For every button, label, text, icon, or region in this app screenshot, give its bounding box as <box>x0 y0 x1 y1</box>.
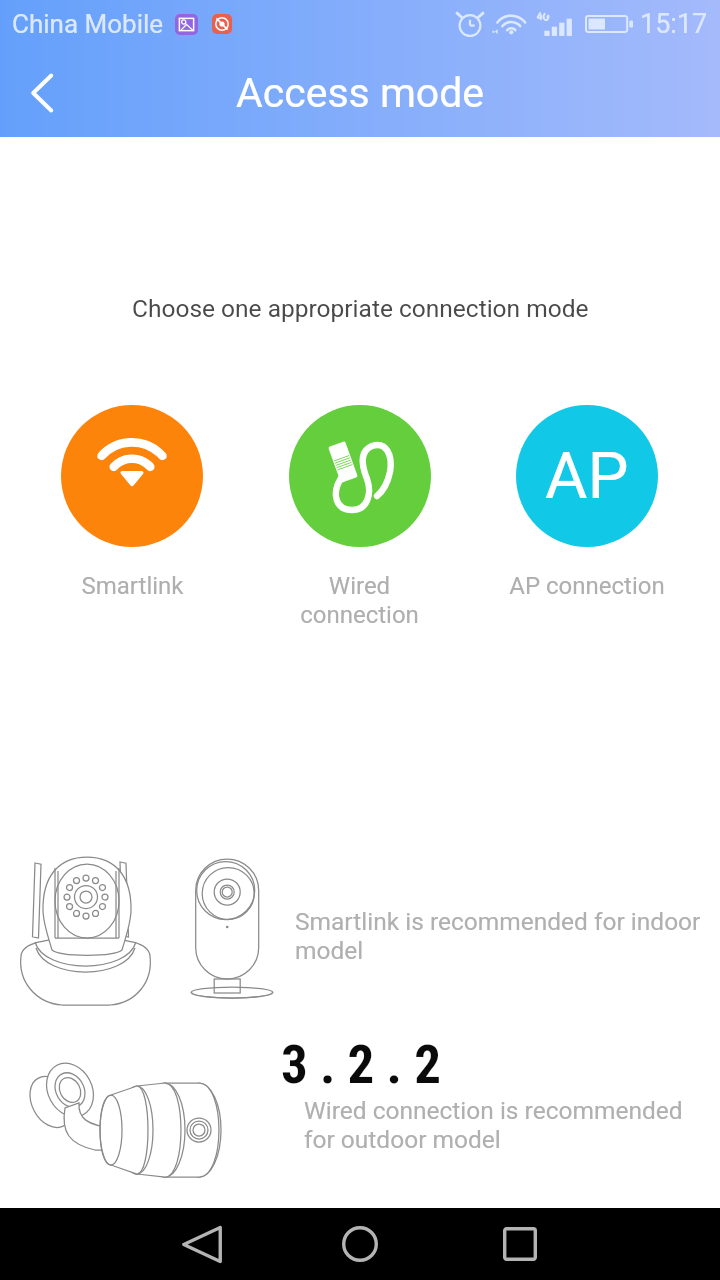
staticText: Wired connection is recommended for outd… <box>304 1096 694 1154</box>
staticText: 3 . 2 . 2 <box>281 1034 442 1096</box>
staticText: Choose one appropriate connection mode <box>132 294 589 323</box>
staticText: AP <box>545 438 629 514</box>
button[interactable]: Back <box>162 1208 242 1280</box>
staticText: Smartlink is recommended for indoor mode… <box>295 907 715 965</box>
staticText: Access mode <box>236 69 485 117</box>
staticText: China Mobile <box>12 9 164 39</box>
button[interactable]: Recent apps <box>480 1208 560 1280</box>
button[interactable]: Wired connection <box>246 405 473 629</box>
staticText: Wired connection <box>300 572 419 629</box>
staticText: 15:17 <box>640 8 708 40</box>
button[interactable]: Home <box>320 1208 400 1280</box>
staticText: AP connection <box>509 572 665 600</box>
button[interactable]: Back <box>0 48 84 137</box>
button[interactable]: AP <box>473 405 700 600</box>
staticText: Smartlink <box>81 572 184 600</box>
button[interactable]: Smartlink <box>18 405 246 600</box>
